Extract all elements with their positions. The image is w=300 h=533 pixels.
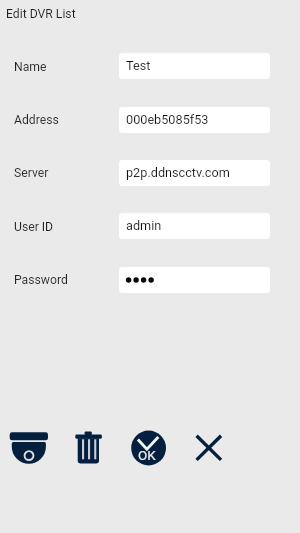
staticText: Server: [14, 166, 49, 180]
button[interactable]: Delete: [73, 429, 104, 466]
staticText: 000eb5085f53: [126, 112, 209, 127]
button[interactable]: admin: [119, 213, 270, 239]
staticText: Name: [14, 60, 47, 74]
staticText: OK: [138, 448, 156, 464]
staticText: Address: [14, 113, 59, 127]
button[interactable]: Test: [119, 53, 270, 79]
staticText: p2p.ddnscctv.com: [126, 165, 230, 180]
button[interactable]: p2p.ddnscctv.com: [119, 160, 270, 186]
staticText: Edit DVR List: [6, 7, 76, 21]
button[interactable]: Cancel: [194, 433, 224, 463]
staticText: admin: [126, 218, 162, 233]
staticText: Password: [14, 273, 68, 287]
button[interactable]: Camera: [9, 430, 50, 466]
button[interactable]: OK: [131, 430, 166, 465]
staticText: User ID: [14, 220, 54, 234]
button[interactable]: [119, 267, 270, 293]
staticText: Test: [126, 58, 151, 73]
button[interactable]: 000eb5085f53: [119, 107, 270, 133]
